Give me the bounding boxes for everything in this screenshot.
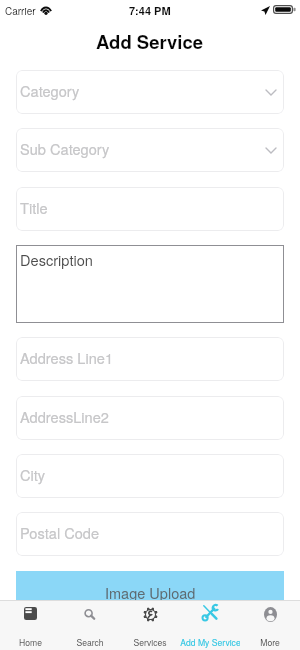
staticText: Home (19, 636, 42, 648)
staticText: City (20, 464, 46, 485)
staticText: Sub Category (20, 138, 110, 159)
button[interactable]: Services (120, 601, 180, 650)
button[interactable]: Home (0, 601, 60, 650)
staticText: Add Service (96, 28, 204, 54)
button[interactable]: Category (16, 70, 284, 114)
button[interactable]: Image Upload (16, 571, 284, 614)
button[interactable]: Address Line1 (16, 337, 284, 381)
staticText: Category (20, 80, 80, 101)
button[interactable]: More (240, 601, 300, 650)
button[interactable]: Search (60, 601, 120, 650)
button[interactable]: Sub Category (16, 128, 284, 172)
other: Wi-Fi (40, 5, 52, 15)
staticText: Add My Service (180, 636, 240, 648)
staticText: Address Line1 (20, 347, 113, 368)
staticText: More (260, 636, 280, 648)
staticText: Description (20, 249, 93, 270)
button[interactable]: City (16, 454, 284, 498)
button[interactable]: Title (16, 187, 284, 231)
button[interactable]: Add My Service (180, 601, 240, 650)
other: Battery (273, 5, 296, 14)
other: Location (261, 6, 270, 15)
button[interactable]: Description (16, 245, 284, 323)
staticText: Services (133, 636, 167, 648)
staticText: Image Upload (105, 582, 196, 603)
other: Expand Category (266, 90, 276, 95)
staticText: Title (20, 197, 48, 218)
staticText: Carrier (5, 4, 36, 18)
staticText: AddressLine2 (20, 406, 109, 427)
staticText: Postal Code (20, 522, 100, 543)
button[interactable]: AddressLine2 (16, 396, 284, 440)
other: Expand Sub Category (266, 148, 276, 153)
staticText: Search (76, 636, 104, 648)
staticText: 7:44 PM (129, 3, 171, 19)
button[interactable]: Postal Code (16, 512, 284, 556)
